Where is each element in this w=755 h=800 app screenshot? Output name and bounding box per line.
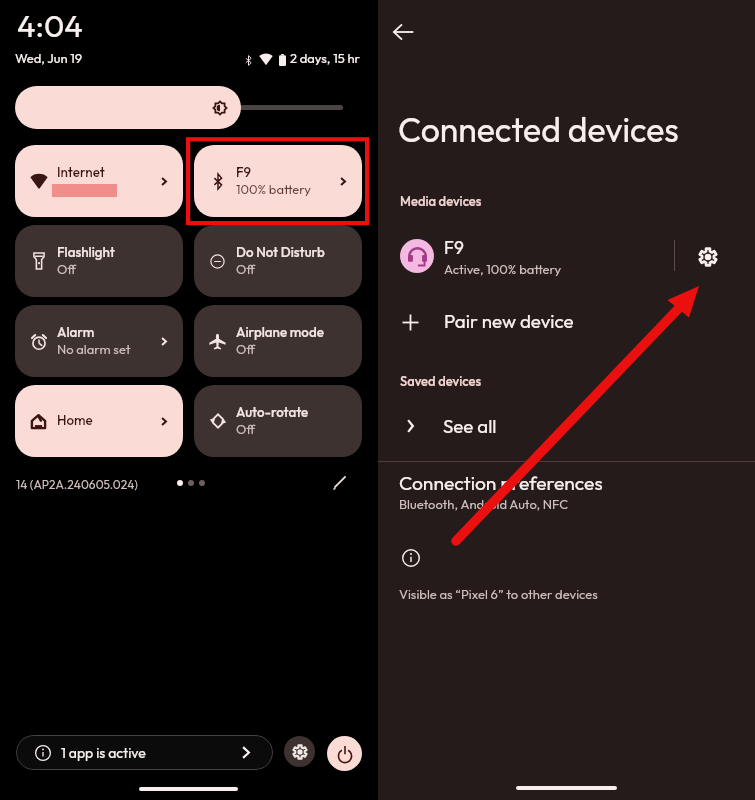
button[interactable]: Auto-rotate bbox=[194, 385, 362, 457]
button[interactable]: Back bbox=[381, 9, 426, 54]
button[interactable] bbox=[378, 300, 755, 345]
button[interactable]: Edit quick settings bbox=[324, 467, 355, 498]
button[interactable]: Alarm bbox=[15, 305, 183, 377]
staticText: Internet bbox=[57, 164, 105, 181]
staticText: See all bbox=[443, 414, 497, 438]
staticText: Wed, Jun 19 bbox=[15, 50, 83, 66]
staticText: Connection preferences bbox=[399, 471, 603, 495]
staticText: 14 (AP2A.240605.024) bbox=[16, 477, 138, 492]
button[interactable]: Airplane mode bbox=[194, 305, 362, 377]
staticText: Home bbox=[57, 412, 93, 429]
button[interactable]: Settings bbox=[284, 736, 315, 767]
button[interactable]: Internet bbox=[15, 145, 183, 217]
staticText: 100% battery bbox=[236, 181, 312, 197]
button[interactable]: F9 device settings bbox=[685, 234, 730, 279]
staticText: No alarm set bbox=[57, 341, 131, 357]
staticText: Airplane mode bbox=[236, 324, 324, 341]
staticText: 2 days, 15 hr bbox=[290, 50, 360, 66]
button[interactable]: Power bbox=[327, 736, 362, 771]
staticText: Alarm bbox=[57, 324, 95, 341]
staticText: Saved devices bbox=[400, 373, 481, 389]
staticText: Media devices bbox=[400, 193, 482, 209]
button[interactable]: Brightness bbox=[15, 86, 241, 129]
staticText: Off bbox=[57, 261, 77, 277]
button[interactable]: Do Not Disturb bbox=[194, 225, 362, 297]
staticText: Off bbox=[236, 341, 256, 357]
button[interactable]: F9 bbox=[194, 145, 362, 217]
button[interactable]: Flashlight bbox=[15, 225, 183, 297]
staticText: Off bbox=[236, 421, 256, 437]
staticText: Bluetooth, Android Auto, NFC bbox=[399, 496, 569, 512]
staticText: Visible as “Pixel 6” to other devices bbox=[399, 586, 598, 602]
button[interactable]: Home bbox=[15, 385, 183, 457]
staticText: F9 bbox=[444, 236, 464, 258]
button[interactable] bbox=[378, 404, 755, 449]
staticText: Flashlight bbox=[57, 244, 115, 261]
staticText: Do Not Disturb bbox=[236, 244, 325, 261]
staticText: Pair new device bbox=[444, 309, 574, 333]
staticText: Active, 100% battery bbox=[444, 261, 562, 277]
button[interactable] bbox=[378, 228, 755, 286]
staticText: Auto-rotate bbox=[236, 404, 309, 421]
button[interactable] bbox=[378, 466, 755, 522]
staticText: 1 app is active bbox=[61, 744, 146, 762]
staticText: 4:04 bbox=[17, 6, 83, 45]
button[interactable]: 1 app is active bbox=[16, 735, 273, 770]
staticText: Off bbox=[236, 261, 256, 277]
staticText: Connected devices bbox=[398, 108, 679, 151]
staticText: F9 bbox=[236, 164, 252, 181]
